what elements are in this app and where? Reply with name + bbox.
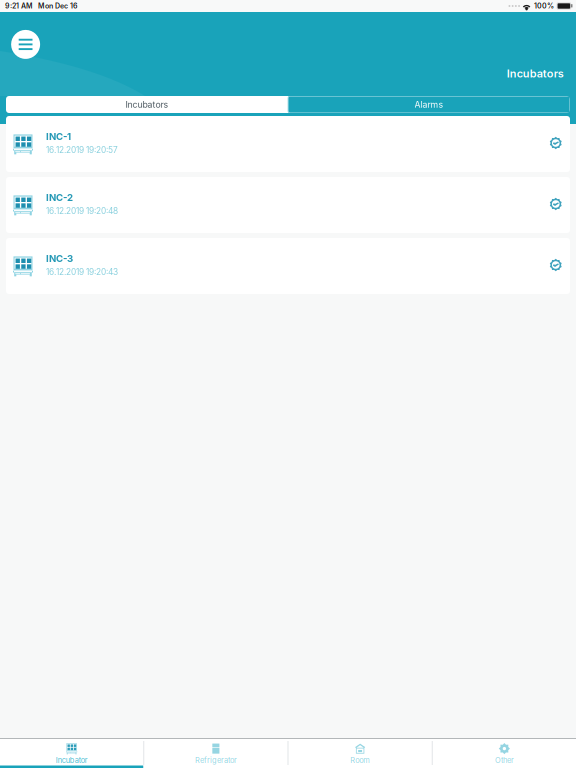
staticText: INC-1 [46, 131, 71, 142]
button[interactable]: Incubators [6, 96, 288, 113]
staticText: Room [350, 756, 370, 765]
staticText: Other [495, 756, 514, 765]
staticText: 16.12.2019 19:20:43 [46, 267, 118, 277]
button[interactable]: Other [433, 739, 576, 768]
staticText: 16.12.2019 19:20:48 [46, 206, 118, 216]
staticText: INC-3 [46, 253, 73, 264]
staticText: Incubators [507, 67, 564, 80]
staticText: 9:21 AM [5, 2, 33, 10]
staticText: Incubator [56, 756, 88, 765]
button[interactable]: INC-3 [6, 238, 570, 294]
staticText: Alarms [414, 99, 443, 110]
button[interactable]: Room [288, 739, 432, 768]
staticText: Incubators [125, 99, 168, 110]
button[interactable]: INC-1 [6, 116, 570, 172]
button[interactable]: Menu [9, 27, 43, 61]
button[interactable]: INC-2 [6, 177, 570, 233]
staticText: Mon Dec 16 [38, 2, 78, 10]
staticText: 16.12.2019 19:20:57 [46, 145, 118, 155]
button[interactable]: Refrigerator [144, 739, 287, 768]
staticText: 100% [534, 2, 554, 10]
button[interactable]: Incubator [0, 739, 143, 768]
button[interactable]: Alarms [288, 96, 570, 113]
staticText: Refrigerator [195, 756, 237, 765]
staticText: INC-2 [46, 192, 73, 203]
